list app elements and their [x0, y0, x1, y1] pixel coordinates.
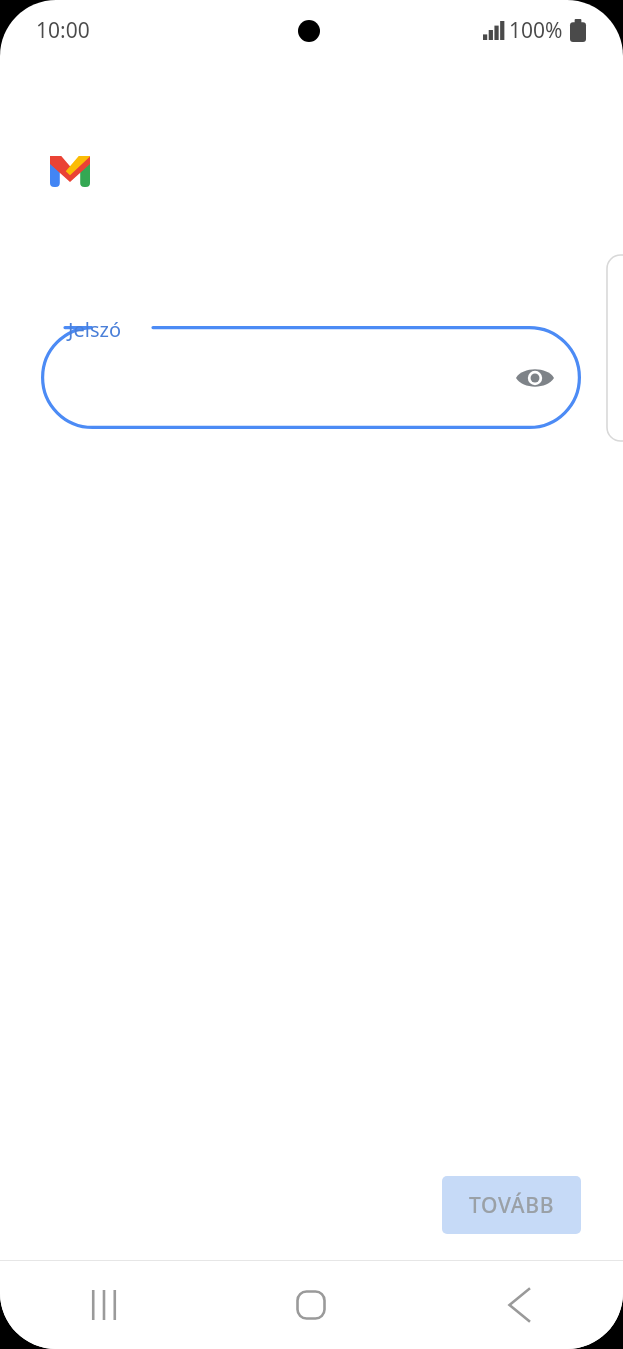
staticText: 100%: [509, 16, 563, 45]
button[interactable]: Show password: [511, 354, 559, 402]
staticText: 10:00: [36, 16, 90, 45]
button[interactable]: Show password: [41, 326, 581, 429]
button[interactable]: Back: [415, 1261, 623, 1349]
staticText: TOVÁBB: [469, 1191, 555, 1220]
button[interactable]: Home: [207, 1261, 415, 1349]
button[interactable]: Recents: [0, 1261, 207, 1349]
button[interactable]: TOVÁBB: [442, 1176, 581, 1234]
staticText: Jelszó: [68, 316, 121, 343]
